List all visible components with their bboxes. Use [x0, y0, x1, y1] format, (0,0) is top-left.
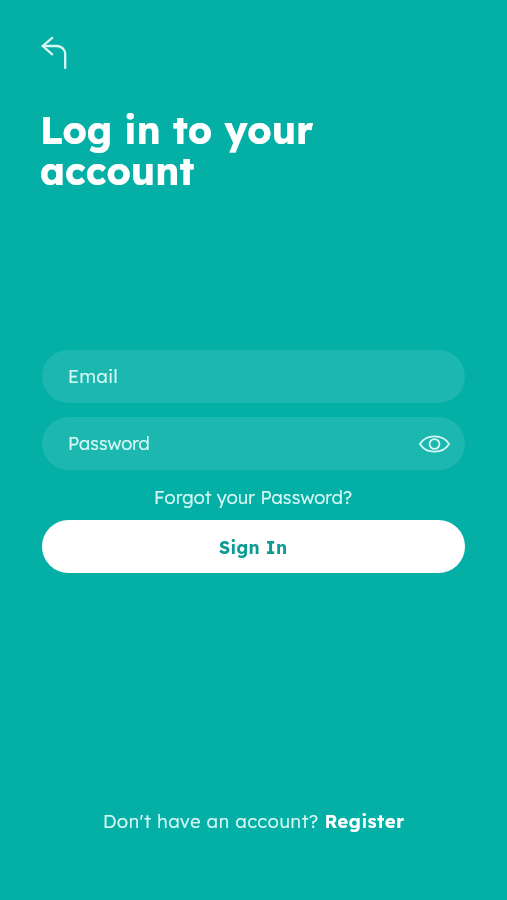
- staticText: Log in to your account: [40, 106, 314, 195]
- button[interactable]: Back: [32, 30, 78, 76]
- staticText: Password: [68, 432, 150, 455]
- button[interactable]: Sign In: [42, 520, 465, 573]
- button[interactable]: Password: [42, 417, 465, 470]
- staticText: Sign In: [219, 536, 288, 558]
- button[interactable]: Don't have an account? Register: [93, 806, 415, 837]
- button[interactable]: Forgot your Password?: [144, 483, 363, 512]
- staticText: Email: [68, 365, 119, 388]
- button[interactable]: Show password: [412, 422, 456, 466]
- button[interactable]: Email: [42, 350, 465, 403]
